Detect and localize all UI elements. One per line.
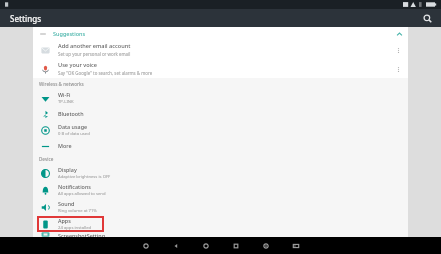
button[interactable]: Recent apps bbox=[229, 239, 242, 252]
staticText: More bbox=[58, 142, 72, 149]
staticText: Ring volume at 71% bbox=[58, 208, 97, 214]
button[interactable]: ScreenshotSetting bbox=[33, 232, 408, 237]
button[interactable]: Add another email account bbox=[33, 40, 408, 59]
button[interactable]: Home bbox=[199, 239, 212, 252]
staticText: Data usage bbox=[58, 123, 88, 130]
staticText: Set up your personal or work email bbox=[58, 51, 131, 57]
staticText: Bluetooth bbox=[58, 110, 84, 117]
button[interactable]: Apps bbox=[33, 215, 408, 232]
staticText: Notifications bbox=[58, 183, 91, 190]
staticText: Adaptive brightness is OFF bbox=[58, 174, 111, 180]
button[interactable]: Sound bbox=[33, 198, 408, 215]
staticText: All apps allowed to send bbox=[58, 191, 106, 197]
button[interactable]: Display bbox=[33, 164, 408, 181]
button[interactable]: Screenshot bbox=[139, 239, 152, 252]
staticText: Use your voice bbox=[58, 61, 98, 69]
button[interactable]: More bbox=[33, 138, 408, 153]
staticText: Wireless & networks bbox=[39, 81, 84, 87]
staticText: Say "OK Google" to search, set alarms & … bbox=[58, 70, 153, 76]
button[interactable]: Bluetooth bbox=[33, 106, 408, 121]
button[interactable]: Back bbox=[169, 239, 182, 252]
staticText: 0 B of data used bbox=[58, 131, 90, 137]
staticText: ScreenshotSetting bbox=[58, 232, 106, 237]
staticText: TP-LINK bbox=[58, 99, 74, 105]
staticText: 24 apps installed bbox=[58, 225, 92, 231]
staticText: Add another email account bbox=[58, 42, 131, 50]
staticText: Display bbox=[58, 166, 77, 173]
button[interactable]: Collapse suggestions bbox=[393, 28, 405, 40]
button[interactable]: Notifications bbox=[33, 181, 408, 198]
button[interactable]: Suggestions bbox=[33, 27, 408, 40]
button[interactable]: Use your voice bbox=[33, 59, 408, 78]
button[interactable]: Wi-Fi bbox=[33, 89, 408, 106]
button[interactable]: More options bbox=[391, 43, 405, 57]
staticText: Apps bbox=[58, 217, 71, 224]
staticText: Wi-Fi bbox=[58, 91, 71, 98]
button[interactable]: Search bbox=[419, 10, 435, 26]
staticText: Suggestions bbox=[53, 30, 86, 37]
button[interactable]: Keyboard bbox=[289, 239, 302, 252]
button[interactable]: Data usage bbox=[33, 121, 408, 138]
staticText: Sound bbox=[58, 200, 75, 207]
button[interactable]: More options bbox=[391, 62, 405, 76]
staticText: Settings bbox=[10, 13, 42, 24]
staticText: Device bbox=[39, 156, 54, 162]
button[interactable]: Volume bbox=[259, 239, 272, 252]
